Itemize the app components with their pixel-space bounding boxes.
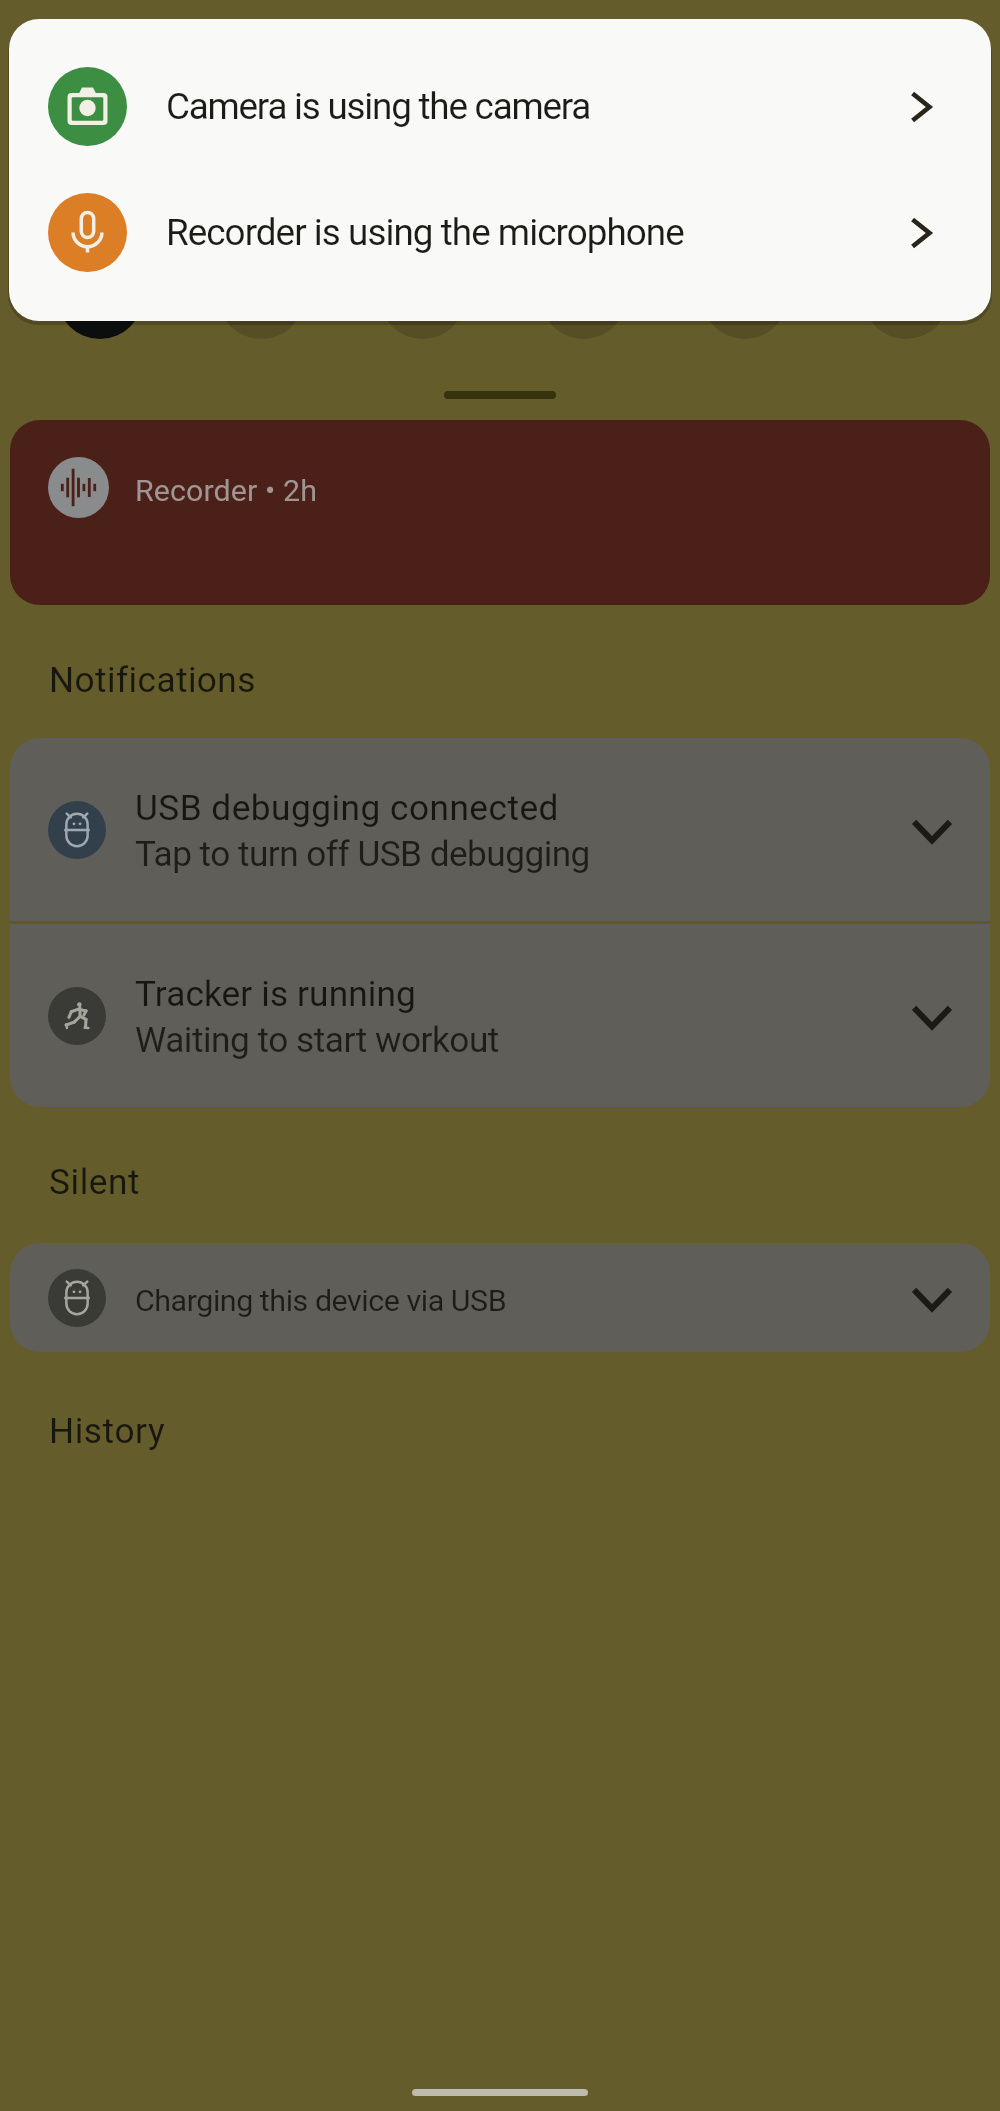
staticText: Camera is using the camera bbox=[166, 85, 906, 128]
other: Details bbox=[906, 218, 936, 248]
other: Expand bbox=[906, 990, 958, 1042]
button[interactable]: Recorder is using the microphone bbox=[9, 193, 991, 272]
staticText: Recorder is using the microphone bbox=[166, 211, 906, 254]
staticText: Silent bbox=[49, 1161, 141, 1202]
staticText: Tap to turn off USB debugging bbox=[135, 833, 590, 874]
staticText: USB debugging connected bbox=[135, 787, 559, 828]
other: Details bbox=[906, 92, 936, 122]
staticText: History bbox=[49, 1410, 166, 1451]
other: Expand bbox=[906, 1272, 958, 1324]
staticText: Tracker is running bbox=[135, 973, 416, 1014]
button[interactable]: Recorder • 2h bbox=[10, 420, 990, 605]
button[interactable]: Camera is using the camera bbox=[9, 67, 991, 146]
other: Expand bbox=[906, 804, 958, 856]
staticText: Notifications bbox=[49, 659, 256, 700]
button[interactable]: Charging this device via USB bbox=[10, 1243, 990, 1352]
staticText: Waiting to start workout bbox=[135, 1019, 499, 1060]
button[interactable]: USB debugging connected bbox=[10, 738, 990, 921]
staticText: Recorder • 2h bbox=[135, 473, 318, 509]
staticText: Charging this device via USB bbox=[135, 1283, 906, 1319]
button[interactable]: Tracker is running bbox=[10, 924, 990, 1107]
